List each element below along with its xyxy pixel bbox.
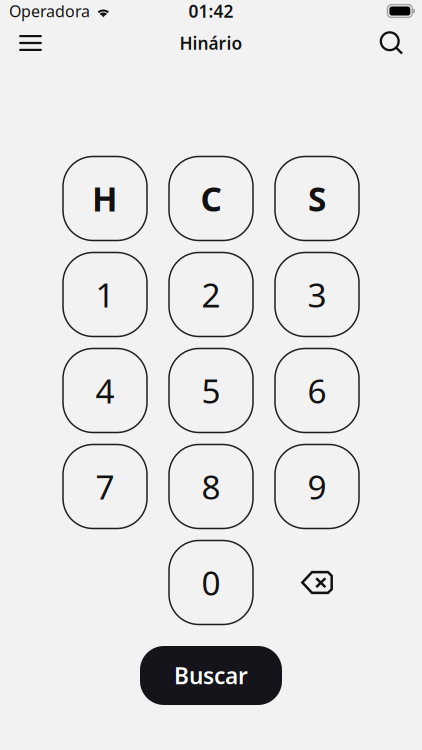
staticText: 0 (201, 560, 220, 605)
staticText: 5 (201, 368, 220, 413)
button[interactable]: 2 (169, 252, 253, 336)
button[interactable]: H (63, 156, 147, 240)
staticText: 2 (201, 272, 220, 317)
button[interactable]: 0 (169, 540, 253, 624)
staticText: Hinário (179, 31, 242, 54)
staticText: Buscar (174, 660, 248, 690)
button[interactable]: 5 (169, 348, 253, 432)
button[interactable]: Buscar (140, 646, 282, 705)
button[interactable]: Apagar (275, 540, 359, 624)
staticText: 7 (95, 464, 114, 509)
staticText: C (200, 176, 221, 221)
button[interactable]: 1 (63, 252, 147, 336)
button[interactable]: 7 (63, 444, 147, 528)
button[interactable]: 6 (275, 348, 359, 432)
staticText: 8 (201, 464, 220, 509)
button[interactable]: Menu (9, 22, 52, 64)
staticText: 1 (95, 272, 114, 317)
button[interactable]: Buscar (370, 22, 413, 64)
staticText: H (92, 176, 118, 221)
staticText: S (308, 176, 326, 221)
button[interactable]: S (275, 156, 359, 240)
staticText: 3 (307, 272, 326, 317)
staticText: 6 (307, 368, 326, 413)
staticText: 01:42 (188, 0, 233, 22)
staticText: Operadora (9, 0, 90, 22)
button[interactable]: C (169, 156, 253, 240)
button[interactable]: 8 (169, 444, 253, 528)
button[interactable]: 4 (63, 348, 147, 432)
button[interactable]: 9 (275, 444, 359, 528)
button[interactable]: 3 (275, 252, 359, 336)
staticText: 4 (95, 368, 114, 413)
staticText: 9 (307, 464, 326, 509)
